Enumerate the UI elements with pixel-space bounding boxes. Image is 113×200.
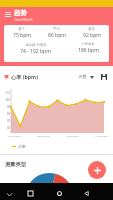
button[interactable]: Hide keyboard — [5, 190, 13, 198]
staticText: 86 bpm — [48, 32, 66, 39]
staticText: 测量类型 — [5, 161, 26, 168]
staticText: 90 — [7, 105, 10, 109]
staticText: 04-02-2018 — [37, 134, 50, 137]
staticText: 建议最小/最高 — [25, 42, 47, 47]
staticText: 100 — [5, 98, 10, 102]
staticText: 110 — [5, 91, 10, 95]
staticText: 74 - 102 bpm — [20, 48, 51, 55]
staticText: 趋势 — [14, 9, 27, 17]
staticText: 186 bpm — [78, 47, 99, 54]
staticText: 11-02-2018 — [95, 134, 108, 137]
staticText: 70 — [7, 119, 10, 123]
button[interactable]: Add — [88, 161, 106, 179]
staticText: 天数 — [78, 74, 87, 80]
staticText: 07-02-2018 — [66, 134, 79, 137]
staticText: 最高 — [88, 27, 95, 31]
button[interactable]: 天数 — [77, 74, 95, 80]
staticText: 心率储备 — [81, 42, 95, 46]
staticText: 92 bpm — [83, 32, 101, 39]
button[interactable]: Home — [26, 189, 34, 197]
staticText: Beat Watch — [14, 17, 33, 22]
staticText: 60 — [7, 126, 10, 130]
staticText: 最小 — [18, 27, 25, 31]
staticText: 75 bpm — [13, 32, 31, 39]
staticText: 心率 (bpm) — [11, 73, 38, 80]
staticText: 01-01-2018 — [8, 134, 21, 137]
staticText: 80 — [7, 112, 10, 116]
button[interactable]: Back — [82, 189, 90, 197]
button[interactable]: Save — [99, 72, 109, 82]
button[interactable]: Menu — [2, 9, 13, 20]
staticText: 心率 — [18, 144, 26, 149]
staticText: 平均 — [53, 27, 60, 31]
button[interactable]: Recents — [55, 189, 63, 197]
